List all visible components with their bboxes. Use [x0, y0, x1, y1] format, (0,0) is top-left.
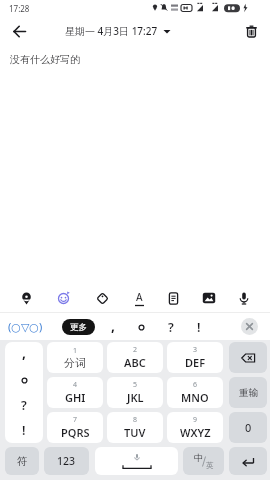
button[interactable] [95, 447, 178, 475]
button[interactable]: 更多 [62, 319, 95, 335]
button[interactable]: 123 [44, 447, 89, 475]
staticText: 更多 [70, 322, 87, 333]
staticText: WXYZ [180, 425, 211, 440]
button[interactable] [159, 284, 187, 312]
button[interactable] [88, 284, 116, 312]
button[interactable]: 中 [183, 447, 224, 475]
staticText: 1 [73, 346, 78, 356]
staticText: A [136, 290, 143, 304]
staticText: 2 [133, 345, 138, 355]
staticText: PQRS [61, 425, 90, 440]
button[interactable]: 4 [47, 377, 103, 408]
button[interactable] [229, 342, 267, 373]
button[interactable]: 7 [47, 412, 103, 443]
staticText: ABC [124, 355, 146, 370]
button[interactable] [50, 284, 78, 312]
button[interactable]: 9 [167, 412, 223, 443]
button[interactable]: 6 [167, 377, 223, 408]
button[interactable] [229, 447, 267, 475]
staticText: 符 [17, 455, 28, 468]
staticText: 英 [206, 461, 214, 470]
button[interactable]: 2 [107, 342, 163, 373]
button[interactable]: 1 [47, 342, 103, 373]
staticText: 中 [194, 452, 203, 463]
button[interactable] [132, 315, 150, 339]
staticText: ! [197, 319, 201, 336]
button[interactable] [12, 284, 40, 312]
staticText: MNO [181, 390, 209, 405]
staticText: TUV [124, 425, 146, 440]
staticText: 9 [193, 415, 198, 425]
button[interactable]: 0 [229, 412, 267, 443]
button[interactable]: 符 [5, 447, 39, 475]
staticText: 123 [57, 454, 76, 468]
staticText: 4 [73, 380, 78, 390]
staticText: , [111, 316, 115, 335]
staticText: 0 [245, 420, 252, 435]
staticText: 7 [73, 415, 78, 425]
button[interactable]: , [104, 315, 122, 339]
button[interactable]: (○▽○) [8, 319, 43, 334]
button[interactable] [230, 284, 258, 312]
staticText: JKL [127, 390, 144, 405]
staticText: 3 [193, 345, 198, 355]
button[interactable] [195, 284, 223, 312]
button[interactable]: 3 [167, 342, 223, 373]
button[interactable]: , [5, 342, 43, 443]
staticText: 星期一 4月3日 17:27 [65, 24, 158, 38]
staticText: DEF [185, 355, 206, 370]
button[interactable]: 星期一 4月3日 17:27 [65, 24, 171, 38]
button[interactable]: ? [162, 315, 180, 339]
staticText: 6 [193, 380, 198, 390]
staticText: ? [21, 397, 27, 414]
button[interactable]: ! [190, 315, 208, 339]
staticText: 8 [133, 415, 138, 425]
button[interactable]: 重输 [229, 377, 267, 408]
staticText: 没有什么好写的 [10, 53, 80, 66]
button[interactable] [241, 21, 261, 41]
button[interactable] [241, 318, 258, 335]
button[interactable]: 5 [107, 377, 163, 408]
button[interactable] [8, 20, 30, 42]
staticText: 5 [133, 380, 138, 390]
staticText: , [22, 343, 26, 362]
staticText: 重输 [239, 387, 258, 399]
staticText: ? [168, 319, 174, 336]
button[interactable]: 8 [107, 412, 163, 443]
staticText: 分词 [64, 356, 86, 370]
staticText: GHI [65, 390, 86, 405]
button[interactable]: A [125, 284, 153, 312]
staticText: ! [22, 422, 26, 439]
staticText: 17:28 [9, 3, 30, 14]
